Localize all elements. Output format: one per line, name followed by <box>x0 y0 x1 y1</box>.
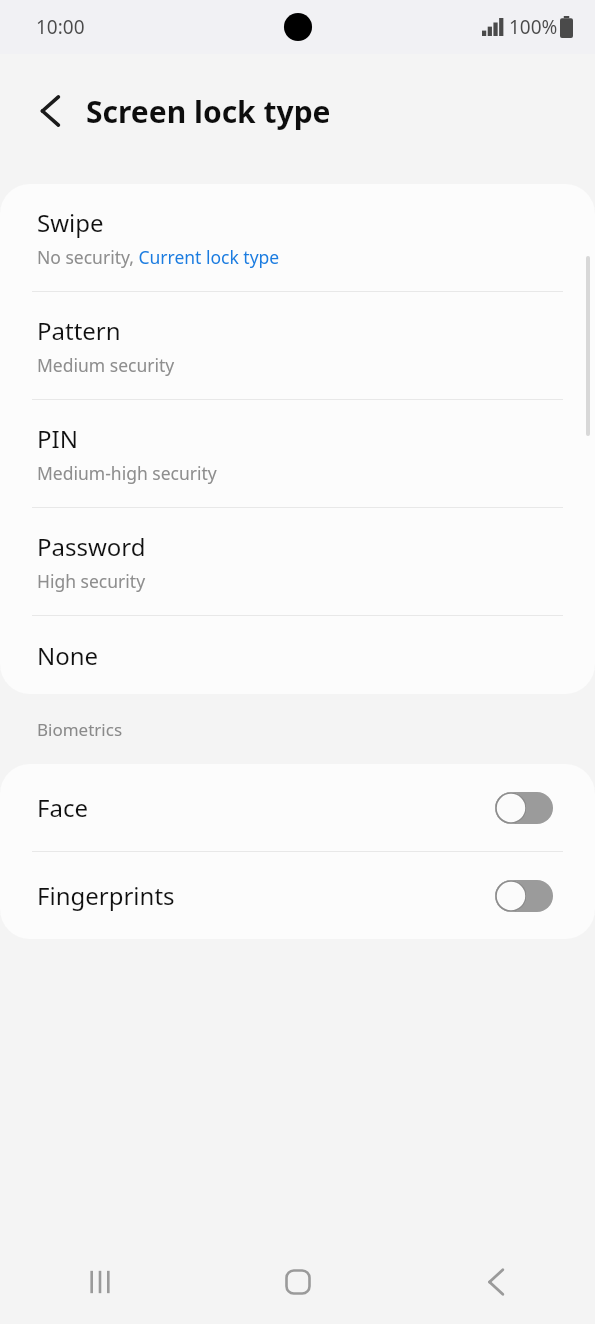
button[interactable]: None <box>0 616 595 694</box>
staticText: No security, Current lock type <box>37 245 280 269</box>
button[interactable]: Face <box>0 764 595 851</box>
staticText: Swipe <box>37 206 104 239</box>
staticText: Pattern <box>37 314 121 347</box>
button[interactable]: Swipe <box>0 184 595 291</box>
button[interactable]: Recents <box>0 1240 199 1324</box>
staticText: PIN <box>37 422 78 455</box>
button[interactable]: Back <box>397 1240 595 1324</box>
staticText: Medium security <box>37 353 175 377</box>
staticText: Biometrics <box>37 718 123 741</box>
button[interactable]: Pattern <box>0 292 595 399</box>
staticText: High security <box>37 569 146 593</box>
staticText: Password <box>37 530 146 563</box>
button[interactable]: Password <box>0 508 595 615</box>
staticText: None <box>37 639 99 672</box>
staticText: 10:00 <box>36 14 85 40</box>
button[interactable]: Fingerprints <box>0 852 595 939</box>
button[interactable]: Back <box>22 83 78 139</box>
button[interactable]: PIN <box>0 400 595 507</box>
staticText: Screen lock type <box>86 91 331 132</box>
staticText: 100% <box>509 14 558 40</box>
staticText: Medium-high security <box>37 461 217 485</box>
staticText: Fingerprints <box>37 879 175 912</box>
button[interactable]: Home <box>199 1240 397 1324</box>
staticText: Face <box>37 791 88 824</box>
